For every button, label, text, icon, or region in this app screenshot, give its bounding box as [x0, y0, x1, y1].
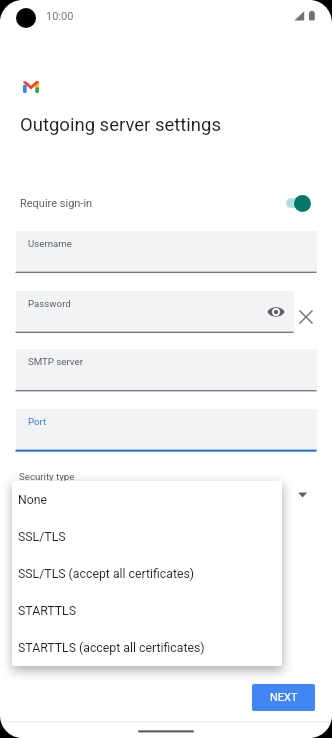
- staticText: Port: [28, 416, 47, 427]
- staticText: SMTP server: [28, 356, 83, 367]
- staticText: Security type: [19, 471, 75, 482]
- button[interactable]: STARTTLS (accept all certificates): [12, 629, 282, 666]
- staticText: NEXT: [270, 691, 298, 704]
- button[interactable]: SMTP server: [16, 349, 317, 391]
- button[interactable]: Clear: [294, 305, 318, 329]
- button[interactable]: NEXT: [252, 684, 315, 711]
- button[interactable]: Password: [16, 291, 294, 333]
- staticText: Outgoing server settings: [20, 114, 222, 136]
- button[interactable]: SSL/TLS (accept all certificates): [12, 555, 282, 592]
- staticText: SSL/TLS: [18, 530, 66, 544]
- staticText: None: [18, 493, 48, 507]
- button[interactable]: Require sign-in: [0, 190, 332, 216]
- staticText: STARTTLS (accept all certificates): [18, 641, 205, 655]
- staticText: STARTTLS: [18, 604, 76, 618]
- button[interactable]: Username: [16, 231, 317, 273]
- button[interactable]: SSL/TLS: [12, 518, 282, 555]
- button[interactable]: Show password: [264, 300, 288, 324]
- staticText: Require sign-in: [20, 197, 93, 210]
- staticText: 10:00: [46, 10, 74, 23]
- staticText: Password: [28, 298, 71, 309]
- button[interactable]: None: [12, 481, 282, 518]
- button[interactable]: STARTTLS: [12, 592, 282, 629]
- button[interactable]: Port: [16, 409, 317, 451]
- staticText: SSL/TLS (accept all certificates): [18, 567, 195, 581]
- staticText: Username: [28, 238, 72, 249]
